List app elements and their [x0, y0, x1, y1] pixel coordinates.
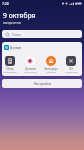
- staticText: Приложение: [3, 71, 17, 74]
- staticText: SIS: [69, 67, 73, 71]
- staticText: Календарь: [44, 67, 58, 71]
- staticText: Настройки: [34, 82, 51, 86]
- button[interactable]: Настройки: [2, 79, 82, 88]
- button[interactable]: Календарь: [42, 56, 60, 74]
- staticText: Поиск: [12, 33, 21, 37]
- staticText: Вулкан: [10, 45, 22, 50]
- other: Search: [5, 32, 10, 37]
- button[interactable]: Обзор: [2, 56, 19, 74]
- staticText: воскресенье: [3, 21, 22, 25]
- button[interactable]: Дневник: [21, 56, 39, 74]
- staticText: 7:28: [2, 1, 9, 6]
- staticText: Обзор: [6, 67, 14, 71]
- staticText: События: [46, 71, 56, 74]
- staticText: Расписание: [24, 71, 37, 74]
- staticText: Дневник: [25, 67, 36, 71]
- button[interactable]: Search: [2, 30, 82, 38]
- button[interactable]: SIS: [62, 56, 80, 74]
- staticText: Расписание: [65, 71, 78, 74]
- staticText: 9 октября: [3, 11, 36, 20]
- button[interactable]: Вулкан: [4, 45, 22, 50]
